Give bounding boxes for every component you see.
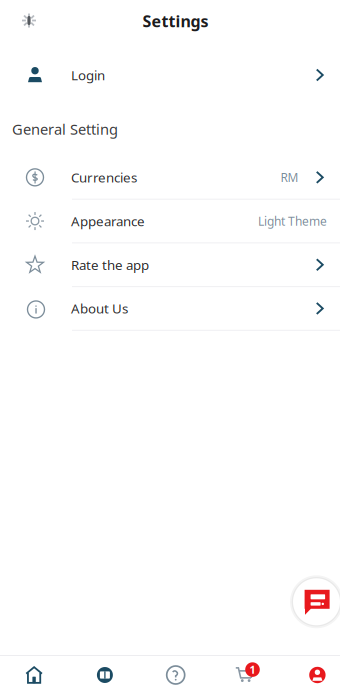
staticText: Light Theme (258, 213, 327, 229)
button[interactable]: Catalogue (78, 656, 132, 694)
staticText: RM (280, 169, 298, 185)
staticText: Settings (142, 10, 208, 32)
button[interactable]: About Us (0, 287, 340, 331)
button[interactable]: Login (0, 53, 340, 97)
staticText: Login (71, 66, 105, 84)
button[interactable]: Chat with us (288, 574, 340, 630)
staticText: 1 (249, 662, 255, 677)
button[interactable]: Appearance (0, 200, 340, 243)
button[interactable]: Rate the app (0, 243, 340, 287)
staticText: About Us (71, 300, 128, 317)
button[interactable]: Help (149, 656, 203, 694)
button[interactable]: Refresh (14, 5, 44, 35)
button[interactable]: Home (7, 656, 61, 694)
button[interactable]: Account (290, 656, 340, 694)
staticText: General Setting (12, 119, 118, 139)
staticText: Appearance (71, 212, 145, 230)
button[interactable]: Currencies (0, 156, 340, 200)
staticText: Currencies (71, 168, 137, 186)
staticText: Rate the app (71, 256, 149, 274)
button[interactable]: Cart (217, 656, 271, 694)
